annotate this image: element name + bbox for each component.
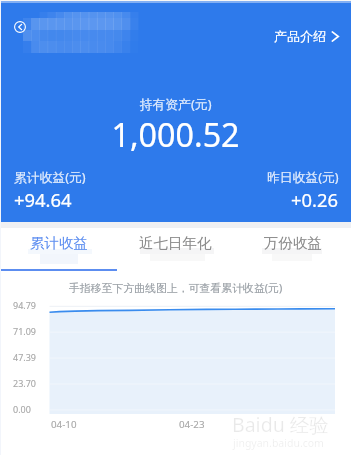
- staticText: +0.26: [291, 187, 339, 212]
- button[interactable]: Back: [14, 21, 26, 33]
- staticText: 1,000.52: [0, 112, 351, 156]
- staticText: 04-23: [179, 418, 205, 431]
- staticText: 万份收益: [264, 234, 322, 252]
- staticText: 0.00: [13, 403, 31, 415]
- button[interactable]: 近七日年化: [117, 228, 234, 270]
- staticText: 近七日年化: [139, 234, 212, 252]
- staticText: 累计收益(元): [14, 168, 86, 185]
- staticText: 持有资产(元): [0, 95, 351, 113]
- staticText: +94.64: [14, 187, 72, 212]
- staticText: 47.39: [13, 351, 37, 363]
- staticText: Baidu 经验: [232, 411, 329, 438]
- button[interactable]: 产品介绍: [274, 28, 340, 44]
- button[interactable]: 累计收益: [0, 228, 117, 270]
- staticText: 累计收益: [30, 234, 88, 252]
- staticText: 71.09: [13, 325, 37, 337]
- staticText: 产品介绍: [274, 28, 326, 44]
- staticText: 手指移至下方曲线图上，可查看累计收益(元): [0, 280, 351, 295]
- staticText: 04-10: [51, 418, 77, 431]
- staticText: 23.70: [13, 377, 37, 389]
- staticText: 94.79: [13, 299, 37, 311]
- staticText: jingyan.baidu.com: [233, 436, 324, 450]
- staticText: 昨日收益(元): [267, 168, 339, 185]
- button[interactable]: 万份收益: [234, 228, 351, 270]
